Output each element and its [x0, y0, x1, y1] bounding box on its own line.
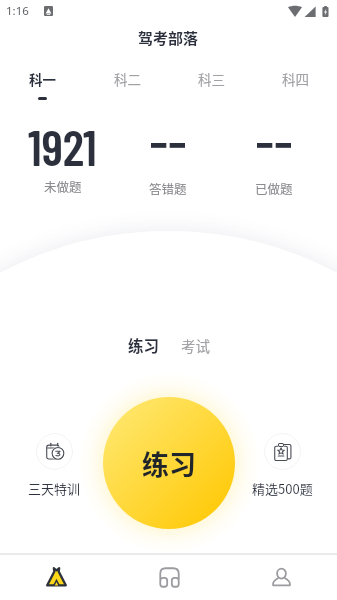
staticText: 练习 — [128, 334, 160, 356]
staticText: 科一 — [29, 69, 56, 89]
staticText: 精选500题 — [252, 479, 313, 498]
button[interactable]: Profile — [225, 555, 337, 600]
staticText: 科四 — [282, 69, 309, 89]
button[interactable]: 科三 — [169, 69, 253, 97]
button[interactable]: 精选500题 — [248, 433, 317, 498]
staticText: 驾考部落 — [138, 27, 199, 49]
staticText: 练习 — [142, 444, 196, 483]
staticText: 答错题 — [149, 179, 187, 197]
button[interactable]: 练习 — [125, 330, 163, 360]
button[interactable]: 科二 — [85, 69, 169, 97]
button[interactable]: 练习 — [103, 397, 235, 529]
staticText: 科二 — [114, 69, 141, 89]
button[interactable]: 三天特训 — [20, 433, 89, 498]
staticText: 1:16 — [6, 3, 29, 19]
staticText: 未做题 — [44, 177, 82, 195]
button[interactable]: 科一 — [0, 69, 85, 100]
staticText: 三天特训 — [28, 479, 81, 498]
staticText: 已做题 — [255, 179, 293, 197]
staticText: 1921 — [28, 116, 97, 176]
staticText: 考试 — [181, 335, 210, 356]
button[interactable]: Audio lessons — [113, 555, 225, 600]
button[interactable]: Practice — [0, 555, 113, 600]
button[interactable]: 考试 — [178, 331, 213, 360]
button[interactable]: 科四 — [253, 69, 337, 97]
staticText: 科三 — [198, 69, 225, 89]
